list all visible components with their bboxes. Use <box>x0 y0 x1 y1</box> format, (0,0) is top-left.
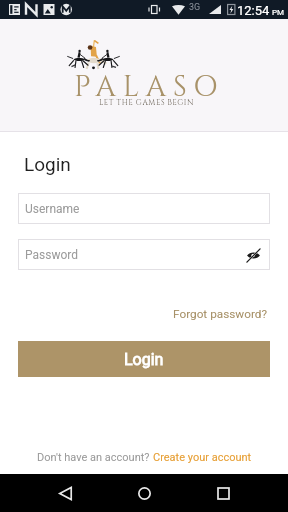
staticText: PM <box>272 8 285 17</box>
button[interactable]: Home <box>126 475 162 511</box>
staticText: Login <box>24 153 71 175</box>
staticText: PALASO <box>74 68 225 107</box>
button[interactable]: Forgot password? <box>173 307 268 321</box>
staticText: Don't have an account? <box>37 451 153 464</box>
staticText: 3G <box>189 2 201 13</box>
staticText: Password <box>25 248 79 262</box>
staticText: 12:54 <box>237 3 270 18</box>
button[interactable]: Show password <box>242 244 264 266</box>
button[interactable]: Login <box>18 341 270 377</box>
staticText: Forgot password? <box>173 307 268 321</box>
button[interactable]: Password <box>18 239 270 270</box>
staticText: Username <box>25 202 80 216</box>
button[interactable]: Username <box>18 193 270 224</box>
button[interactable]: Back <box>47 475 83 511</box>
staticText: LET THE GAMES BEGIN <box>99 98 194 108</box>
staticText: Login <box>124 350 164 369</box>
button[interactable]: Create your account <box>153 451 252 464</box>
staticText: Create your account <box>153 451 252 464</box>
button[interactable]: Recent apps <box>205 475 241 511</box>
